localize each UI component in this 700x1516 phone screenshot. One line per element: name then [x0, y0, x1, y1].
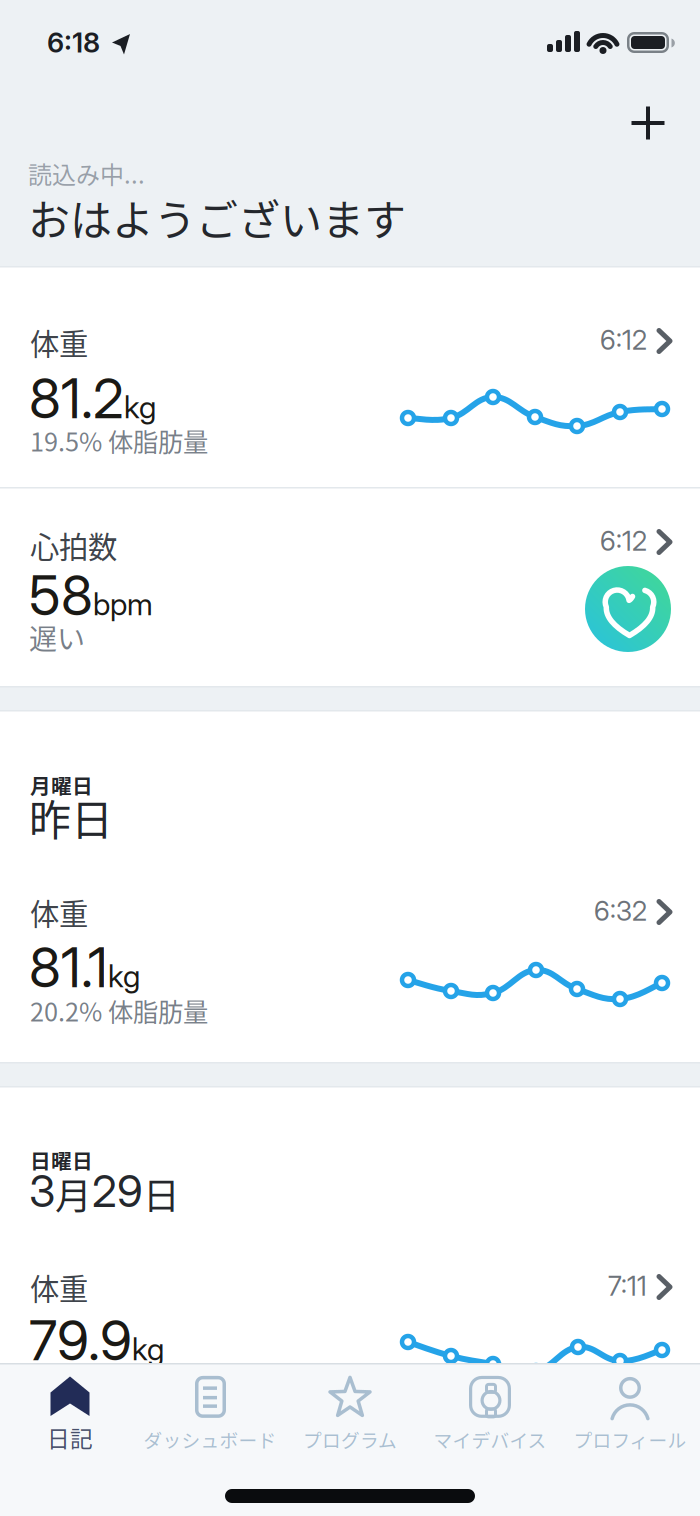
staticText: 6:18 — [47, 26, 100, 59]
staticText: 79.9kg — [29, 1308, 164, 1372]
staticText: 月曜日 — [30, 770, 93, 800]
button[interactable]: 追加 — [618, 93, 678, 153]
button[interactable]: 心拍数 — [0, 488, 700, 687]
staticText: 20.2% 体脂肪量 — [30, 992, 208, 1029]
staticText: 81.1kg — [29, 935, 140, 999]
button[interactable]: ダッシュボード — [140, 1376, 280, 1453]
staticText: 58bpm — [29, 563, 153, 627]
button[interactable]: プロフィール — [560, 1376, 700, 1453]
staticText: 心拍数 — [30, 524, 117, 566]
staticText: 3月29日 — [29, 1165, 180, 1219]
button[interactable]: 日記 — [0, 1375, 140, 1454]
staticText: 読込み中... — [28, 156, 145, 191]
staticText: 体重 — [30, 1266, 88, 1308]
button[interactable]: プログラム — [280, 1376, 420, 1453]
staticText: 体重 — [30, 891, 88, 933]
staticText: プロフィール — [573, 1426, 686, 1453]
staticText: 19.5% 体脂肪量 — [30, 422, 208, 459]
staticText: おはようございます — [28, 187, 406, 248]
button[interactable]: マイデバイス — [420, 1376, 560, 1453]
staticText: 日記 — [47, 1421, 93, 1454]
staticText: ダッシュボード — [143, 1426, 276, 1453]
staticText: 6:12 — [600, 525, 647, 557]
button[interactable]: 体重 — [0, 267, 700, 488]
staticText: 6:32 — [594, 895, 647, 927]
staticText: 7:11 — [608, 1270, 647, 1302]
staticText: 体重 — [30, 321, 88, 363]
staticText: 81.2kg — [29, 366, 156, 430]
staticText: マイデバイス — [433, 1426, 546, 1453]
staticText: 遅い — [29, 617, 85, 657]
staticText: 6:12 — [600, 324, 647, 356]
staticText: 日曜日 — [30, 1145, 93, 1175]
button[interactable]: 体重 — [0, 1220, 700, 1363]
staticText: プログラム — [303, 1426, 397, 1453]
staticText: 昨日 — [29, 787, 113, 848]
button[interactable]: 体重 — [0, 845, 700, 1063]
